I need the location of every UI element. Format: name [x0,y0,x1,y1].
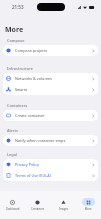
staticText: Dashboard [6,207,20,211]
button[interactable]: Networks & volumes [3,73,98,84]
button[interactable]: Terms of Use (EULA) [3,170,98,181]
button[interactable]: Create container [3,110,98,121]
staticText: Containers [7,103,28,108]
staticText: More [5,25,24,35]
staticText: Notify when container stops [15,138,92,143]
staticText: Legal [7,152,17,157]
staticText: Compose [7,38,25,43]
button[interactable]: Compose projects [3,45,98,56]
button[interactable]: More [76,193,101,215]
staticText: Alerts [7,128,18,133]
staticText: Swarm [15,87,92,92]
staticText: Images [59,207,69,211]
button[interactable]: Images [51,193,76,215]
button[interactable]: Containers [25,193,50,215]
button[interactable]: Dashboard [0,193,25,215]
button[interactable]: Privacy Policy [3,159,98,170]
staticText: Create container [15,113,92,118]
button[interactable]: Swarm [3,84,98,95]
staticText: More [85,207,92,211]
button[interactable]: Notify when container stops [3,135,98,146]
staticText: 21:53 [12,4,24,10]
staticText: Privacy Policy [15,162,92,167]
staticText: Terms of Use (EULA) [15,173,92,178]
staticText: Containers [31,207,45,211]
staticText: Compose projects [15,48,92,53]
staticText: Networks & volumes [15,76,92,81]
staticText: Infrastructure [7,66,34,71]
